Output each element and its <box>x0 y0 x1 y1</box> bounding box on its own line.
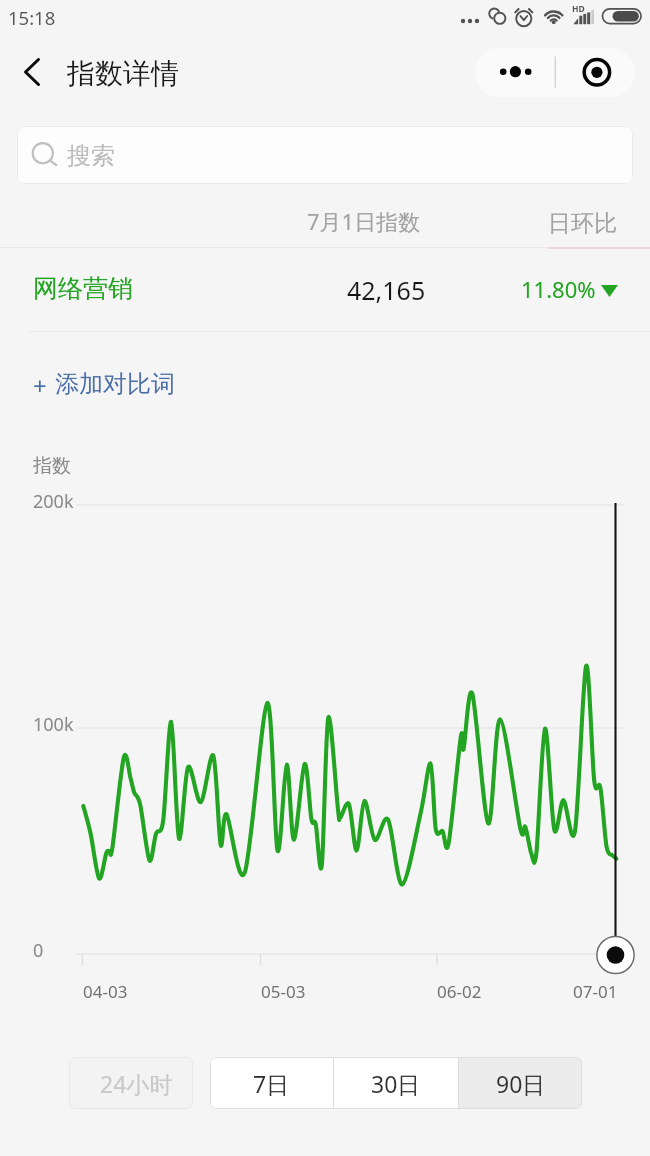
staticText: 网络营销 <box>33 273 133 304</box>
button[interactable]: + <box>24 358 186 410</box>
staticText: 06-02 <box>437 980 482 1003</box>
staticText: + <box>33 369 47 402</box>
staticText: 7月1日指数 <box>307 206 421 236</box>
button[interactable]: 30日 <box>334 1057 458 1109</box>
staticText: 15:18 <box>8 5 56 30</box>
button[interactable]: 90日 <box>459 1057 582 1109</box>
staticText: 42,165 <box>347 273 426 307</box>
button[interactable]: Back <box>12 52 52 92</box>
button[interactable]: Close <box>555 48 635 97</box>
staticText: 指数 <box>33 454 71 478</box>
button[interactable]: 搜索 <box>17 126 633 184</box>
staticText: HD <box>572 3 585 15</box>
staticText: 100k <box>33 712 74 737</box>
staticText: 搜索 <box>67 141 115 171</box>
staticText: 11.80% <box>521 274 596 304</box>
staticText: 04-03 <box>83 980 128 1003</box>
staticText: 添加对比词 <box>55 369 175 399</box>
button[interactable]: More <box>475 48 555 97</box>
staticText: 90日 <box>496 1068 546 1099</box>
staticText: 指数详情 <box>67 56 179 91</box>
button[interactable]: 7日 <box>210 1057 333 1109</box>
staticText: 0 <box>33 938 44 963</box>
staticText: 30日 <box>371 1068 421 1099</box>
staticText: 200k <box>33 489 74 514</box>
staticText: 7日 <box>253 1068 290 1099</box>
button[interactable]: 网络营销 <box>0 246 650 330</box>
staticText: 日环比 <box>548 209 617 238</box>
staticText: 07-01 <box>573 980 618 1003</box>
staticText: 24小时 <box>100 1068 173 1099</box>
staticText: 05-03 <box>261 980 306 1003</box>
button[interactable]: 24小时 <box>69 1057 193 1109</box>
